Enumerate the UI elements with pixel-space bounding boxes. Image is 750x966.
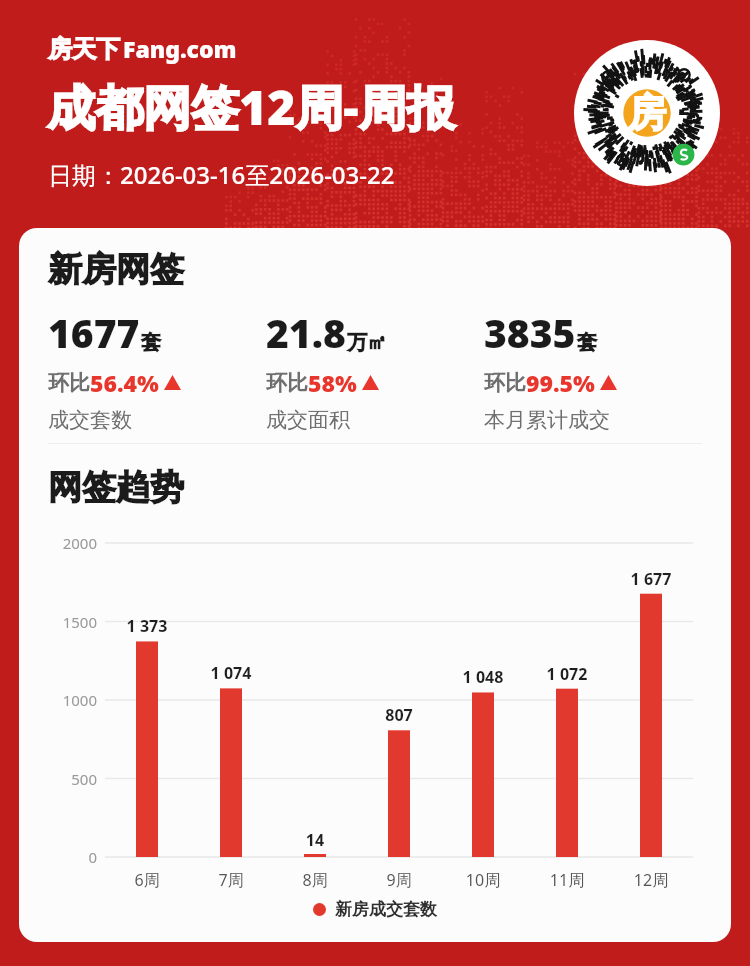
staticText: 1 373	[107, 615, 187, 637]
button[interactable]: 1677	[48, 306, 266, 433]
staticText: 11周	[527, 869, 607, 891]
staticText: 99.5%	[526, 367, 595, 398]
staticText: 本月累计成交	[484, 407, 610, 433]
staticText: 1000	[39, 690, 97, 710]
staticText: 日期：2026-03-16至2026-03-22	[48, 158, 395, 191]
staticText: 1677	[48, 306, 140, 359]
button[interactable]: 微信小程序二维码	[574, 40, 720, 186]
staticText: 套	[577, 330, 597, 355]
staticText: 12周	[611, 869, 691, 891]
staticText: 56.4%	[90, 367, 159, 398]
staticText: 7周	[191, 869, 271, 891]
staticText: 万㎡	[347, 330, 387, 355]
staticText: 2000	[39, 533, 97, 553]
staticText: 500	[39, 769, 97, 789]
staticText: Fang.com	[123, 33, 237, 64]
staticText: 1 074	[191, 662, 271, 684]
staticText: 0	[39, 847, 97, 867]
staticText: 房	[628, 89, 666, 137]
staticText: 网签趋势	[48, 466, 184, 509]
staticText: 8周	[275, 869, 355, 891]
staticText: 3835	[484, 306, 576, 359]
staticText: 成交套数	[48, 407, 132, 433]
button[interactable]: 3835	[484, 306, 704, 433]
staticText: 房天下	[48, 34, 120, 64]
staticText: 1500	[39, 612, 97, 632]
staticText: 6周	[107, 869, 187, 891]
staticText: 环比	[266, 370, 308, 396]
staticText: 环比	[484, 370, 526, 396]
staticText: 新房网签	[48, 248, 184, 291]
staticText: 1 072	[527, 663, 607, 685]
staticText: 新房成交套数	[335, 899, 437, 920]
staticText: 58%	[308, 367, 357, 398]
staticText: 成都网签12周-周报	[47, 74, 455, 140]
button[interactable]: 21.8	[266, 306, 484, 433]
staticText: 10周	[443, 869, 523, 891]
staticText: 14	[275, 829, 355, 851]
staticText: 套	[141, 330, 161, 355]
staticText: 1 677	[611, 568, 691, 590]
button[interactable]: 新房成交套数	[19, 895, 731, 923]
button[interactable]: 房天下 Fang.com	[48, 33, 237, 64]
staticText: 21.8	[266, 306, 346, 359]
staticText: 1 048	[443, 666, 523, 688]
staticText: 环比	[48, 370, 90, 396]
staticText: 9周	[359, 869, 439, 891]
staticText: 成交面积	[266, 407, 350, 433]
staticText: 807	[359, 704, 439, 726]
